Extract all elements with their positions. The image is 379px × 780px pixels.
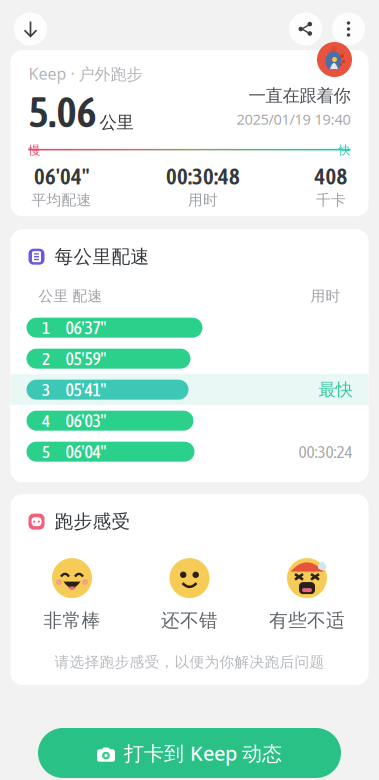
staticText: 公里 [38, 287, 68, 305]
staticText: 06'04" [34, 163, 89, 189]
staticText: 1 [42, 318, 50, 338]
staticText: 还不错 [161, 609, 218, 632]
staticText: 05'41" [65, 379, 106, 400]
staticText: 快 [338, 143, 350, 158]
staticText: 公里 [99, 112, 133, 133]
staticText: 非常棒 [43, 609, 100, 632]
staticText: 每公里配速 [54, 245, 149, 268]
staticText: 4 [42, 411, 50, 431]
staticText: 一直在跟着你 [248, 85, 350, 106]
staticText: 有些不适 [269, 609, 345, 632]
staticText: 3 [42, 380, 50, 400]
button[interactable]: Share [289, 12, 322, 45]
staticText: 05'59" [65, 348, 106, 369]
staticText: 2025/01/19 19:40 [236, 109, 350, 129]
button[interactable]: 有些不适 [265, 558, 349, 632]
staticText: Keep · 户外跑步 [28, 63, 142, 84]
staticText: 06'04" [65, 441, 106, 462]
staticText: 用时 [310, 287, 340, 305]
staticText: 千卡 [316, 191, 346, 209]
staticText: 用时 [188, 191, 218, 209]
staticText: 00:30:24 [298, 442, 352, 462]
staticText: 408 [314, 163, 347, 189]
staticText: 最快 [318, 379, 352, 400]
button[interactable]: 打卡到 Keep 动态 [38, 728, 341, 778]
button[interactable]: 非常棒 [30, 558, 114, 632]
staticText: 06'37" [65, 317, 106, 338]
staticText: 打卡到 Keep 动态 [124, 740, 282, 766]
staticText: 请选择跑步感受，以便为你解决跑后问题 [54, 653, 324, 671]
staticText: 平均配速 [31, 191, 91, 209]
button[interactable]: 还不错 [147, 558, 231, 632]
staticText: 00:30:48 [166, 163, 240, 189]
staticText: 跑步感受 [54, 510, 130, 533]
staticText: 2 [42, 349, 50, 369]
button[interactable]: Back [14, 12, 47, 45]
staticText: 06'03" [65, 410, 106, 431]
staticText: 5.06 [28, 87, 96, 136]
staticText: 5 [42, 442, 50, 462]
staticText: 慢 [28, 143, 40, 158]
staticText: 配速 [72, 287, 102, 305]
button[interactable]: More options [332, 12, 365, 45]
